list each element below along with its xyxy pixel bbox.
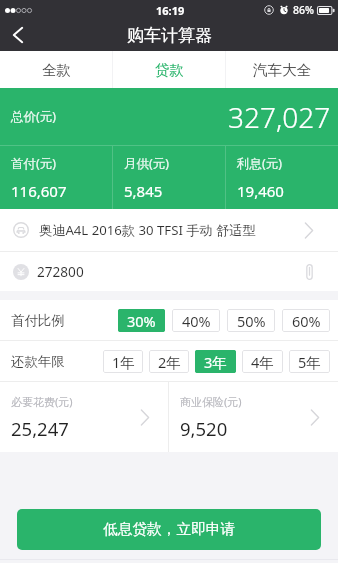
staticText: 30% [127, 311, 156, 331]
staticText: 2年 [158, 352, 181, 372]
button[interactable]: 2年 [149, 350, 189, 373]
other: Edit [306, 264, 313, 280]
staticText: 汽车大全 [253, 61, 311, 79]
staticText: 50% [237, 311, 266, 331]
button[interactable]: 4年 [242, 350, 283, 373]
button[interactable]: 3年 [195, 350, 236, 373]
staticText: 3年 [204, 352, 227, 372]
staticText: 1年 [112, 352, 135, 372]
staticText: 月供(元) [124, 155, 170, 172]
button[interactable]: 必要花费(元) [0, 382, 168, 452]
button[interactable]: 1年 [103, 350, 143, 373]
staticText: 19,460 [237, 181, 284, 201]
button[interactable]: 全款 [0, 51, 112, 88]
button[interactable]: 5年 [289, 350, 330, 373]
staticText: 商业保险(元) [180, 394, 242, 409]
staticText: 9,520 [180, 416, 228, 441]
staticText: 贷款 [155, 61, 184, 79]
staticText: 低息贷款，立即申请 [103, 520, 236, 539]
staticText: 60% [292, 311, 321, 331]
button[interactable]: 汽车大全 [226, 51, 338, 88]
staticText: 5年 [298, 352, 321, 372]
staticText: 327,027 [228, 98, 331, 136]
staticText: 奥迪A4L 2016款 30 TFSI 手动 舒适型 [39, 221, 256, 239]
button[interactable]: 30% [118, 309, 165, 332]
staticText: 16:19 [156, 3, 185, 18]
button[interactable]: 40% [172, 309, 220, 332]
staticText: 全款 [42, 61, 71, 79]
staticText: 还款年限 [11, 353, 65, 370]
staticText: 4年 [251, 352, 274, 372]
button[interactable]: 商业保险(元) [169, 382, 338, 452]
staticText: 116,607 [11, 181, 67, 201]
button[interactable]: 60% [282, 309, 330, 332]
staticText: 首付(元) [11, 155, 57, 172]
staticText: 25,247 [11, 416, 69, 441]
button[interactable]: 奥迪A4L 2016款 30 TFSI 手动 舒适型 [0, 209, 338, 251]
staticText: 总价(元) [11, 108, 57, 125]
button[interactable]: 贷款 [113, 51, 225, 88]
staticText: 必要花费(元) [11, 394, 73, 409]
button[interactable]: Back [0, 20, 40, 51]
staticText: 5,845 [124, 181, 163, 201]
button[interactable]: 低息贷款，立即申请 [17, 509, 321, 550]
staticText: 利息(元) [237, 155, 283, 172]
staticText: 购车计算器 [127, 25, 212, 46]
staticText: 86% [293, 3, 314, 17]
staticText: 首付比例 [11, 312, 65, 329]
staticText: 40% [182, 311, 211, 331]
staticText: 272800 [37, 262, 84, 281]
button[interactable]: 272800 [0, 252, 338, 291]
button[interactable]: 50% [227, 309, 275, 332]
